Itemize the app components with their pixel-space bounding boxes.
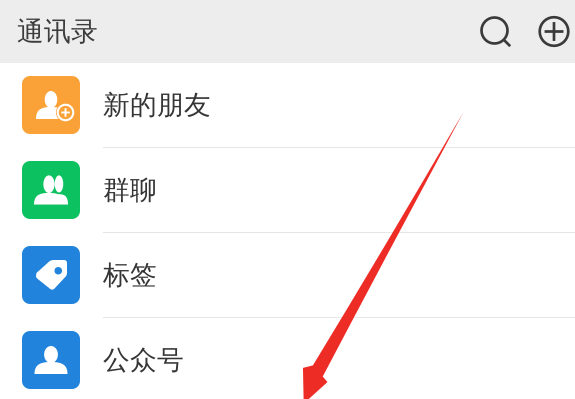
button[interactable]: 搜索 <box>476 0 528 63</box>
staticText: 群聊 <box>103 174 157 206</box>
button[interactable]: 群聊 <box>0 148 575 232</box>
staticText: 公众号 <box>103 344 184 376</box>
button[interactable]: 公众号 <box>0 318 575 399</box>
button[interactable]: 标签 <box>0 233 575 317</box>
staticText: 通讯录 <box>17 15 98 48</box>
staticText: 新的朋友 <box>103 89 211 121</box>
button[interactable]: 添加朋友 <box>528 0 575 63</box>
button[interactable]: 新的朋友 <box>0 63 575 147</box>
staticText: 标签 <box>103 259 157 291</box>
